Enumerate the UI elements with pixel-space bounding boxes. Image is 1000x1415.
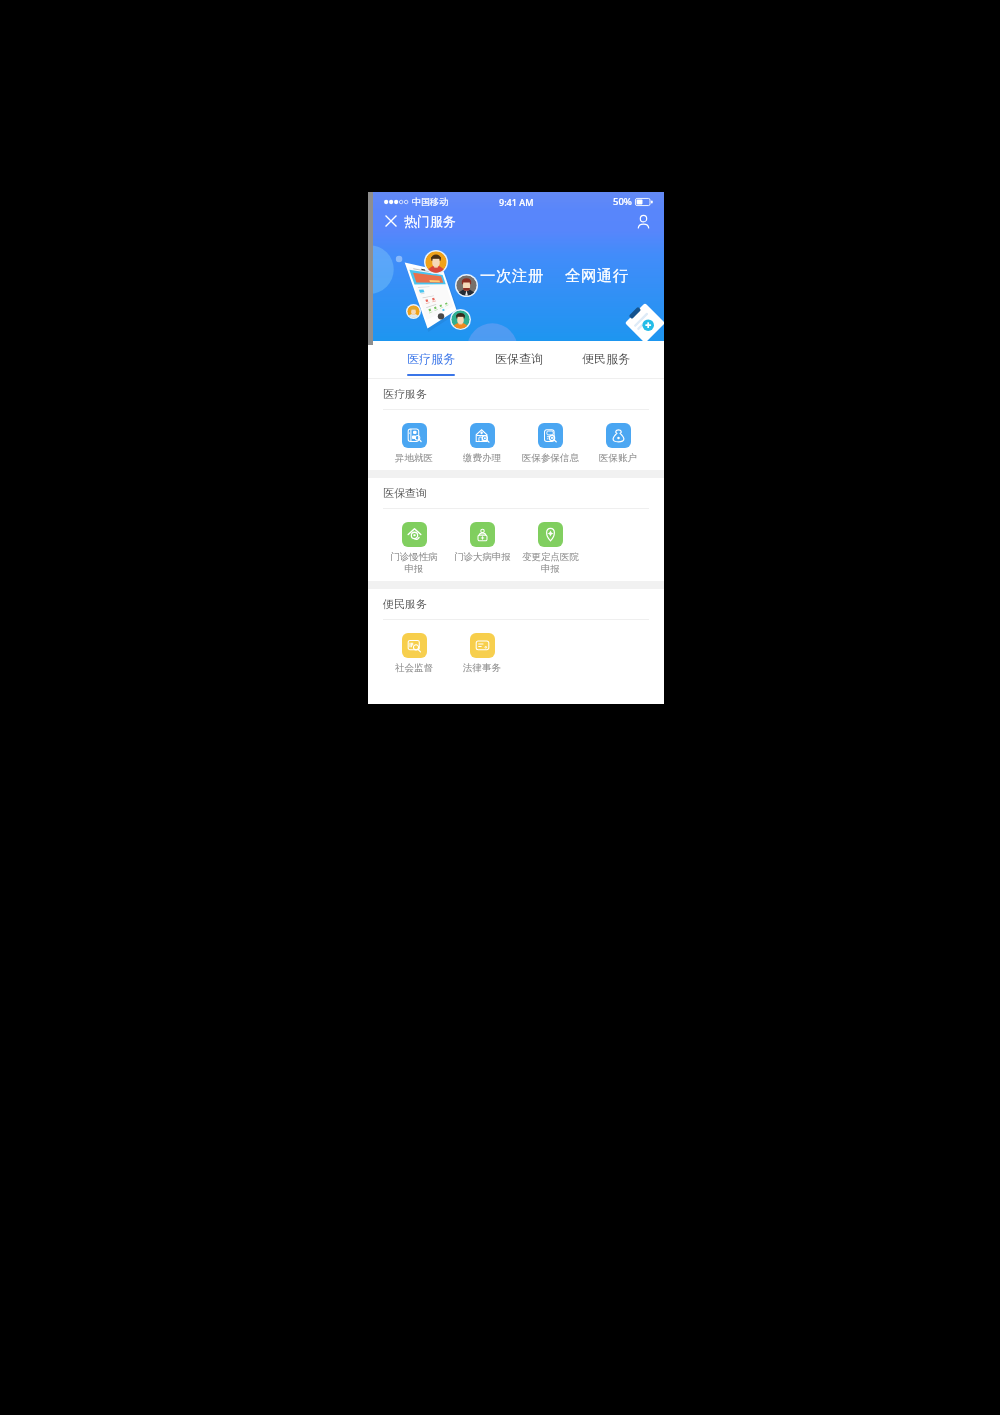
staticText: 全网通行 bbox=[565, 266, 629, 286]
staticText: 一次注册 bbox=[480, 266, 544, 286]
staticText: 医保查询 bbox=[495, 351, 543, 366]
button[interactable]: 门诊大病申报 bbox=[448, 522, 516, 563]
staticText: 医保账户 bbox=[599, 452, 637, 464]
button[interactable]: 医保参保信息 bbox=[516, 423, 584, 464]
button[interactable]: Profile bbox=[631, 211, 655, 231]
staticText: 医疗服务 bbox=[407, 351, 455, 366]
staticText: 热门服务 bbox=[404, 213, 456, 229]
button[interactable]: 便民服务 bbox=[562, 341, 649, 379]
button[interactable]: 异地就医 bbox=[380, 423, 448, 464]
button[interactable]: Close bbox=[379, 211, 403, 231]
button[interactable]: 变更定点医院 申报 bbox=[516, 522, 584, 575]
button[interactable]: 医保账户 bbox=[584, 423, 652, 464]
staticText: 便民服务 bbox=[582, 351, 630, 366]
staticText: 医疗服务 bbox=[383, 387, 427, 401]
staticText: 9:41 AM bbox=[499, 196, 534, 208]
staticText: 中国移动 bbox=[412, 196, 448, 207]
button[interactable]: 法律事务 bbox=[448, 633, 516, 674]
button[interactable]: 医疗服务 bbox=[387, 341, 475, 379]
staticText: 医保查询 bbox=[383, 486, 427, 500]
staticText: 异地就医 bbox=[395, 452, 433, 464]
staticText: 医保参保信息 bbox=[522, 452, 579, 464]
button[interactable]: 医保查询 bbox=[475, 341, 562, 379]
staticText: 门诊大病申报 bbox=[454, 551, 511, 563]
staticText: 缴费办理 bbox=[463, 452, 501, 464]
button[interactable]: 门诊慢性病 申报 bbox=[380, 522, 448, 575]
staticText: 法律事务 bbox=[463, 662, 501, 674]
button[interactable]: 缴费办理 bbox=[448, 423, 516, 464]
staticText: 社会监督 bbox=[395, 662, 433, 674]
staticText: 门诊慢性病 申报 bbox=[390, 551, 438, 575]
staticText: 变更定点医院 申报 bbox=[522, 551, 579, 575]
staticText: 50% bbox=[613, 195, 632, 208]
staticText: 便民服务 bbox=[383, 597, 427, 611]
button[interactable]: 社会监督 bbox=[380, 633, 448, 674]
